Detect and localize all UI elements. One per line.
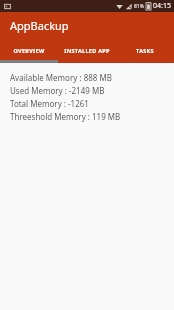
- button[interactable]: TASKS: [116, 38, 174, 63]
- staticText: AppBackup: [10, 18, 69, 33]
- staticText: Threeshold Memory : 119 MB: [10, 111, 121, 122]
- staticText: TASKS: [136, 47, 154, 54]
- staticText: INSTALLED APP: [64, 47, 110, 54]
- staticText: Total Memory : -1261: [10, 98, 89, 109]
- button[interactable]: OVERVIEW: [0, 38, 58, 63]
- staticText: Available Memory : 888 MB: [10, 72, 112, 83]
- staticText: OVERVIEW: [13, 47, 45, 54]
- staticText: Used Memory : -2149 MB: [10, 85, 105, 96]
- staticText: 81%: [134, 3, 144, 10]
- staticText: 04:15: [153, 1, 171, 11]
- button[interactable]: INSTALLED APP: [58, 38, 116, 63]
